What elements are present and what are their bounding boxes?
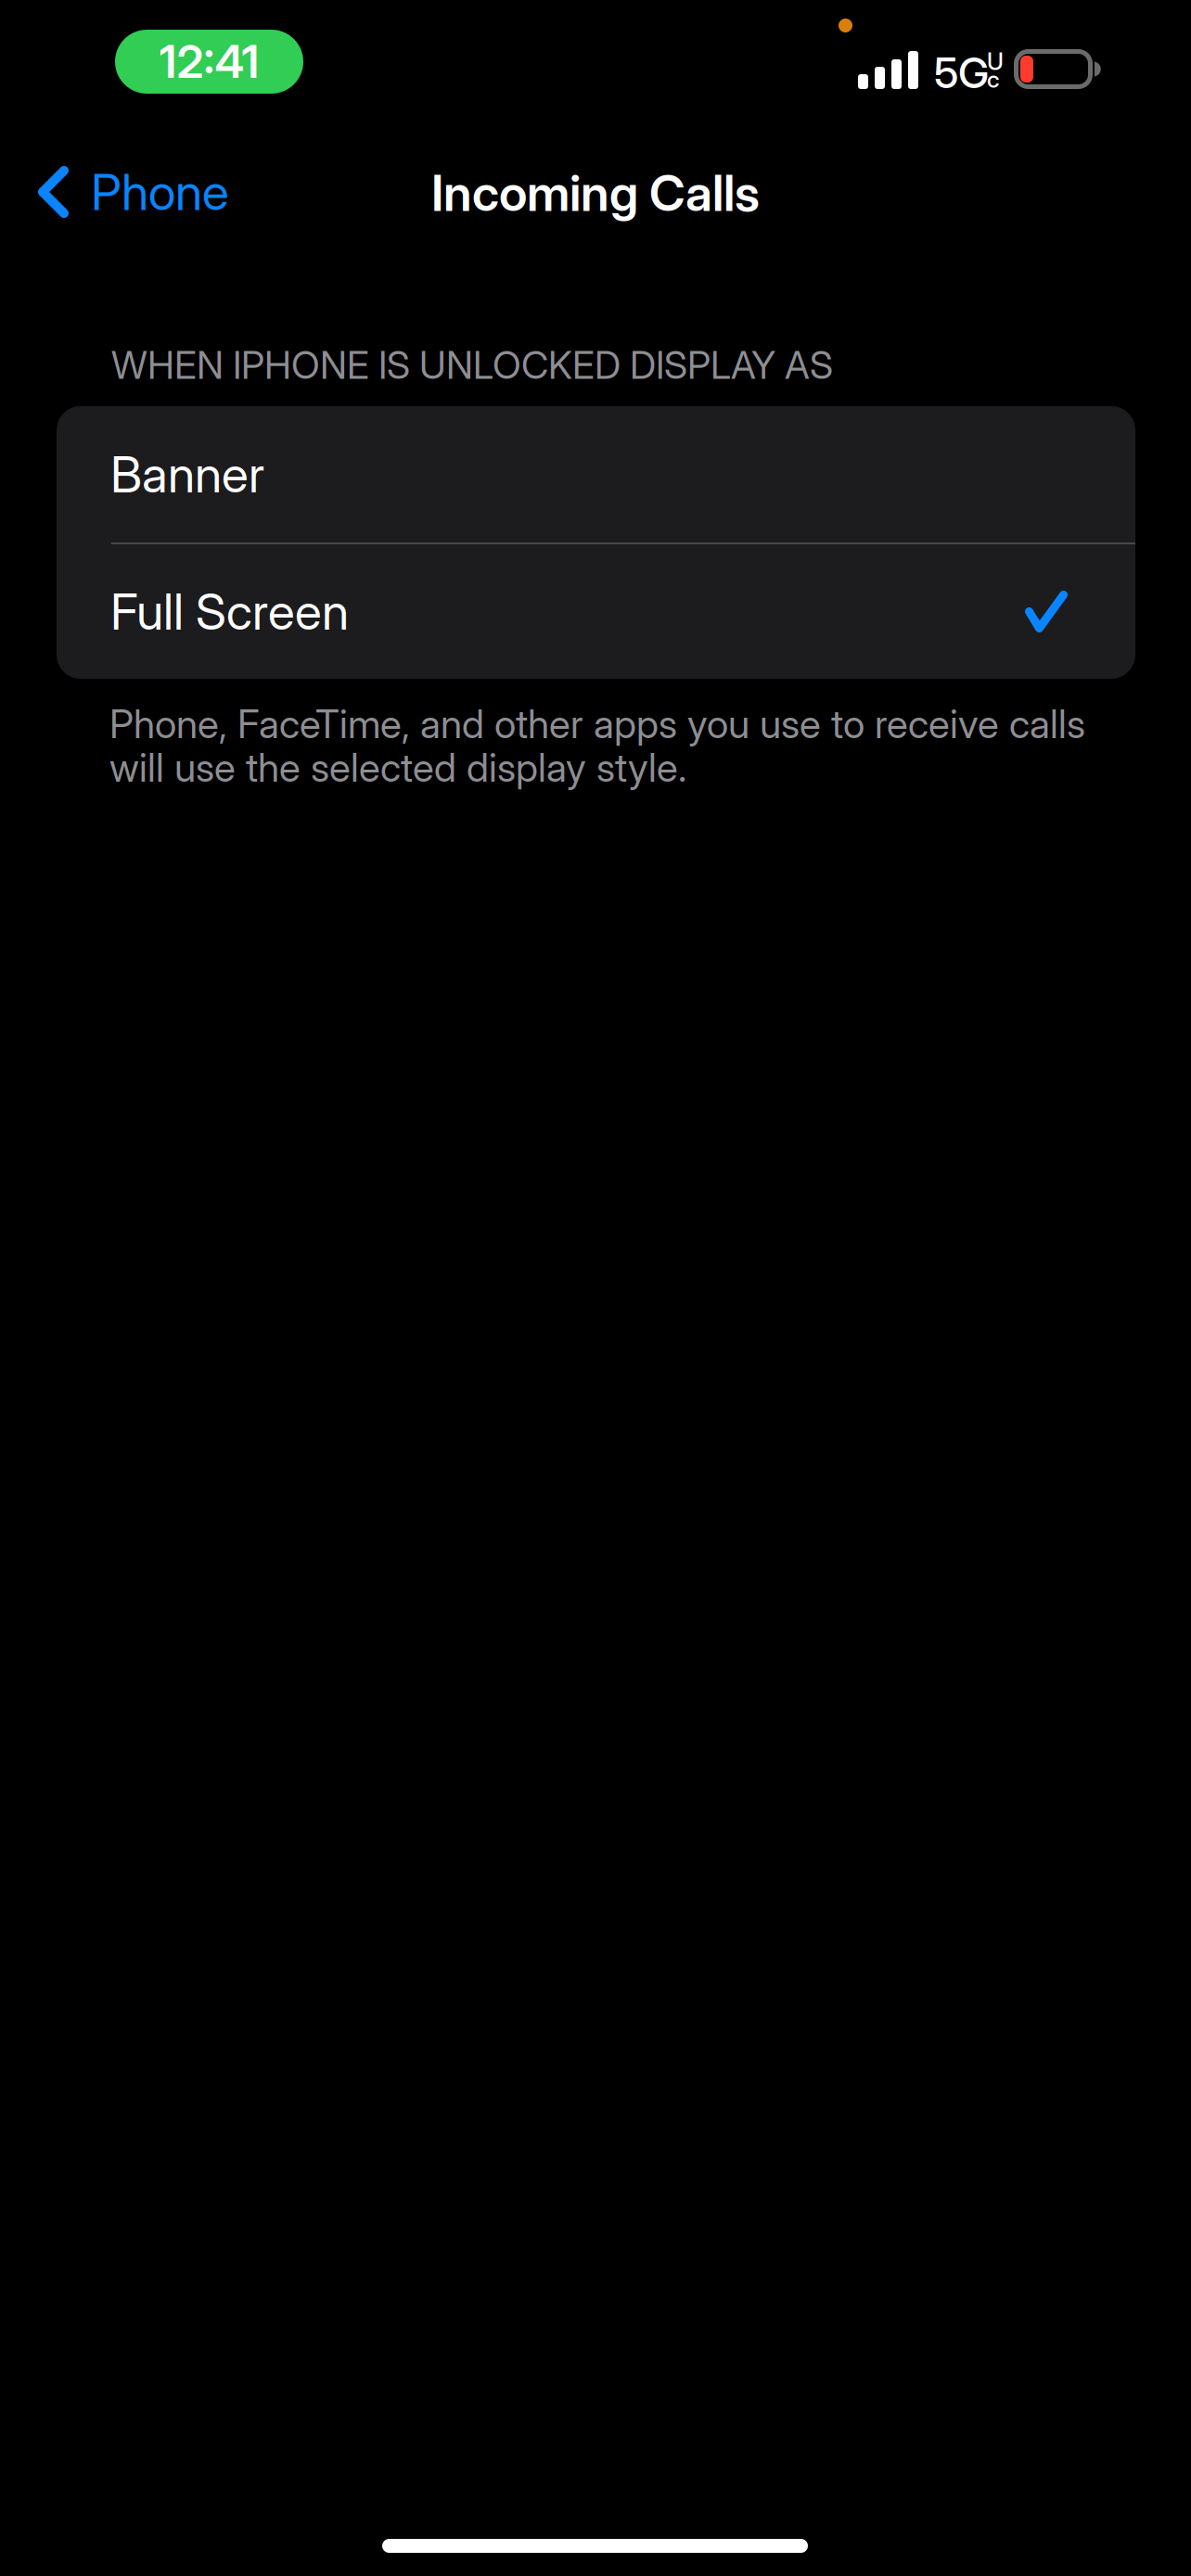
staticText: c — [987, 65, 1000, 93]
staticText: Phone — [91, 162, 229, 222]
staticText: Banner — [110, 444, 264, 504]
staticText: 12:41 — [159, 34, 259, 89]
staticText: Full Screen — [110, 582, 349, 641]
staticText: Phone, FaceTime, and other apps you use … — [109, 700, 1085, 791]
button[interactable]: Full Screen — [57, 544, 1135, 679]
staticText: U — [987, 47, 1004, 76]
button[interactable]: Phone — [0, 150, 257, 234]
staticText: Incoming Calls — [431, 163, 760, 223]
staticText: WHEN IPHONE IS UNLOCKED DISPLAY AS — [111, 342, 833, 388]
staticText: 5G — [934, 47, 989, 98]
button[interactable]: Banner — [57, 406, 1135, 542]
